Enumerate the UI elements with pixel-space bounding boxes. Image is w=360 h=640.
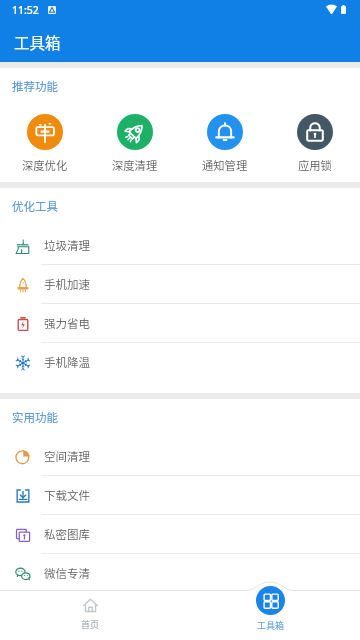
staticText: 工具箱 [257, 619, 285, 632]
staticText: 工具箱 [14, 31, 61, 53]
staticText: 首页 [81, 618, 100, 631]
button[interactable]: 深度优化 [0, 106, 90, 173]
button[interactable]: 微信专清 [0, 554, 360, 593]
staticText: 手机加速 [44, 276, 90, 293]
button[interactable]: 工具箱 [180, 578, 360, 640]
staticText: 实用功能 [12, 409, 58, 426]
staticText: 微信专清 [44, 565, 90, 582]
button[interactable]: 通知管理 [180, 106, 270, 173]
button[interactable]: 首页 [0, 578, 180, 640]
staticText: 11:52 [12, 3, 39, 17]
button[interactable]: 私密图库 [0, 515, 360, 554]
staticText: 空间清理 [44, 448, 90, 465]
staticText: 应用锁 [298, 157, 332, 173]
staticText: 深度清理 [112, 157, 158, 173]
staticText: 优化工具 [12, 198, 58, 215]
staticText: 推荐功能 [12, 78, 58, 95]
button[interactable]: 强力省电 [0, 304, 360, 343]
staticText: 强力省电 [44, 315, 90, 332]
staticText: 通知管理 [202, 157, 248, 173]
button[interactable]: 应用锁 [270, 106, 360, 173]
staticText: 手机降温 [44, 354, 90, 371]
button[interactable]: 手机降温 [0, 343, 360, 382]
staticText: 深度优化 [22, 157, 68, 173]
staticText: 下载文件 [44, 487, 90, 504]
staticText: 私密图库 [44, 526, 90, 543]
button[interactable]: 垃圾清理 [0, 226, 360, 265]
button[interactable]: 手机加速 [0, 265, 360, 304]
button[interactable]: 深度清理 [90, 106, 180, 173]
button[interactable]: 下载文件 [0, 476, 360, 515]
button[interactable]: 空间清理 [0, 437, 360, 476]
staticText: 垃圾清理 [44, 237, 90, 254]
